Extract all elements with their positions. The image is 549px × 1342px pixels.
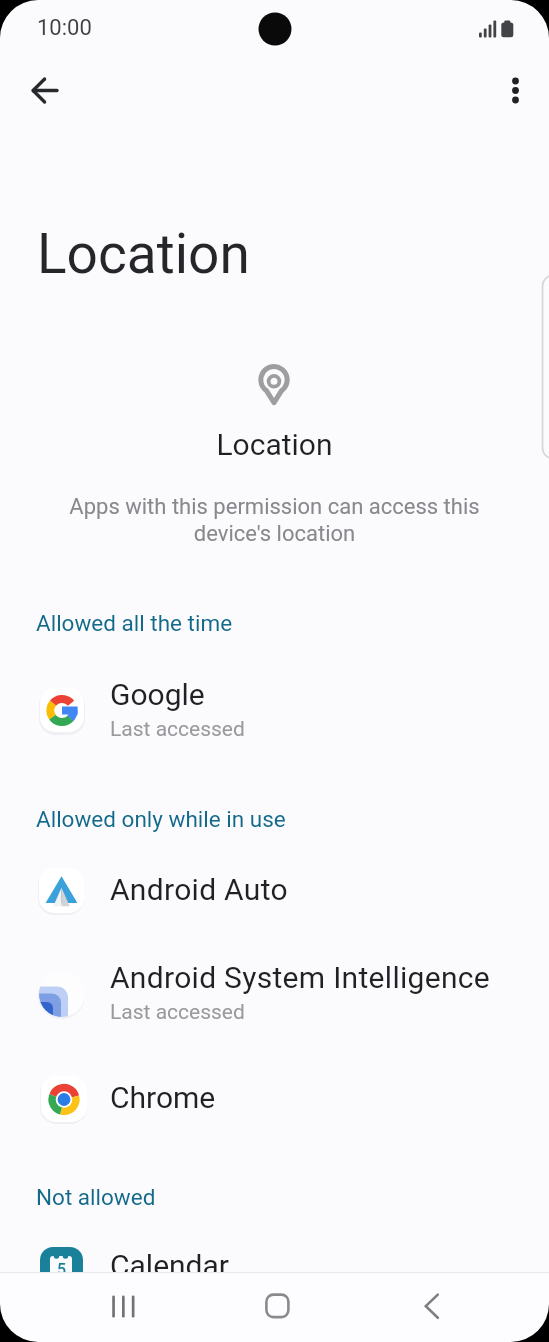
staticText: 5: [57, 1260, 67, 1279]
button[interactable]: [250, 1282, 305, 1330]
button[interactable]: Google: [0, 668, 549, 752]
staticText: Not allowed: [36, 1184, 156, 1210]
staticText: Allowed only while in use: [36, 806, 286, 832]
staticText: Allowed all the time: [36, 610, 233, 636]
button[interactable]: Android Auto: [0, 858, 549, 922]
staticText: 10:00: [37, 15, 92, 41]
button[interactable]: Android System Intelligence: [0, 954, 549, 1038]
staticText: Calendar: [110, 1248, 230, 1283]
button[interactable]: [494, 68, 538, 112]
button[interactable]: 5: [0, 1238, 549, 1300]
staticText: device's location: [0, 521, 549, 547]
staticText: Chrome: [110, 1080, 216, 1115]
staticText: Last accessed: [110, 717, 245, 742]
button[interactable]: Chrome: [0, 1062, 549, 1136]
staticText: Location: [37, 222, 250, 286]
staticText: Google: [110, 677, 205, 712]
button[interactable]: [96, 1282, 151, 1330]
staticText: Last accessed: [110, 1000, 245, 1025]
staticText: Android System Intelligence: [110, 960, 491, 995]
button[interactable]: [405, 1282, 460, 1330]
button[interactable]: [16, 64, 70, 116]
staticText: Android Auto: [110, 872, 288, 907]
staticText: Apps with this permission can access thi…: [0, 494, 549, 520]
staticText: Location: [0, 427, 549, 462]
